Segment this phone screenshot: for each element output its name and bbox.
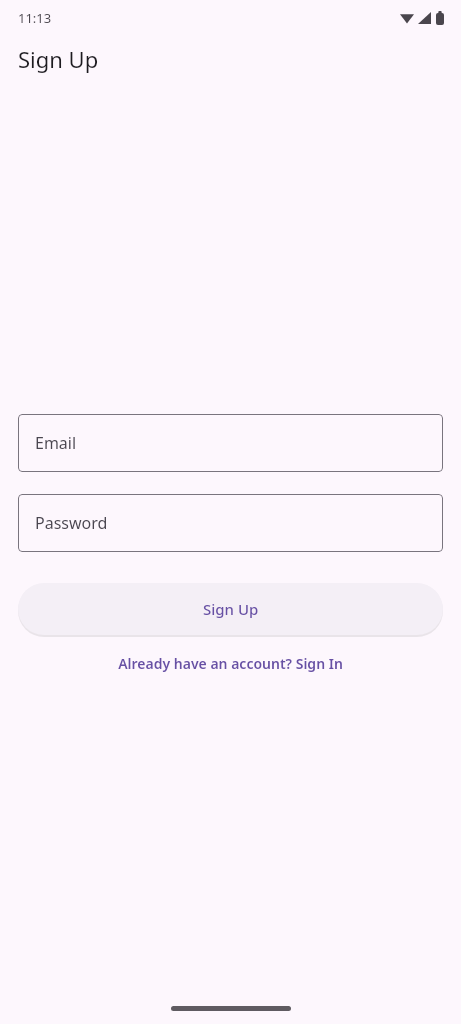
staticText: Email	[35, 432, 77, 454]
staticText: Sign Up	[203, 599, 259, 619]
staticText: Sign Up	[18, 44, 99, 74]
button[interactable]: Email	[18, 414, 443, 472]
staticText: Password	[35, 512, 108, 534]
button[interactable]: Already have an account? Sign In	[0, 647, 461, 679]
staticText: Already have an account? Sign In	[118, 654, 343, 673]
button[interactable]: Sign Up	[18, 583, 443, 635]
staticText: 11:13	[18, 9, 52, 27]
button[interactable]: Password	[18, 494, 443, 552]
